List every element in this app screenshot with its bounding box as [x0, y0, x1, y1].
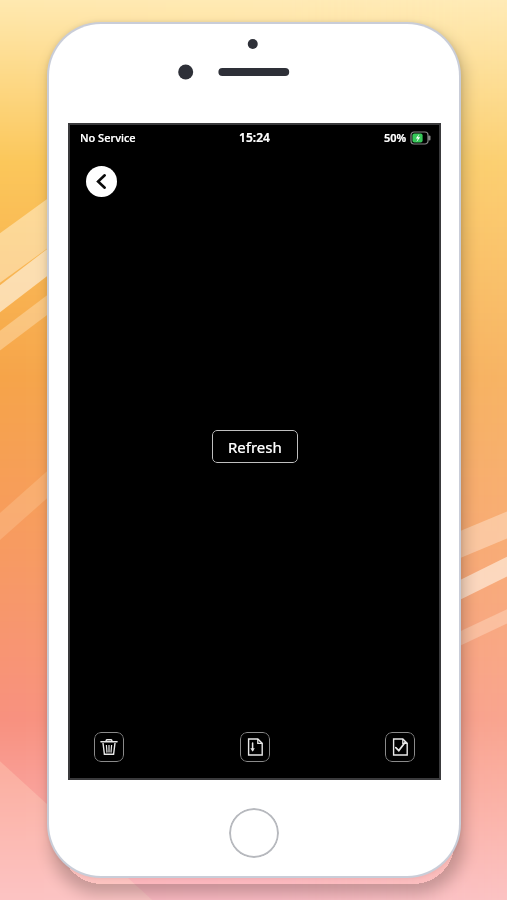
staticText: 15:24 — [239, 129, 270, 145]
staticText: Refresh — [228, 437, 282, 457]
button[interactable]: Approve document — [385, 732, 415, 762]
staticText: 50% — [384, 130, 407, 145]
button[interactable]: Back — [86, 166, 117, 197]
staticText: No Service — [80, 130, 136, 145]
button[interactable]: Save document — [240, 732, 270, 762]
button[interactable]: Refresh — [212, 430, 298, 463]
button[interactable]: Delete — [94, 732, 124, 762]
button[interactable]: Home — [229, 808, 279, 858]
